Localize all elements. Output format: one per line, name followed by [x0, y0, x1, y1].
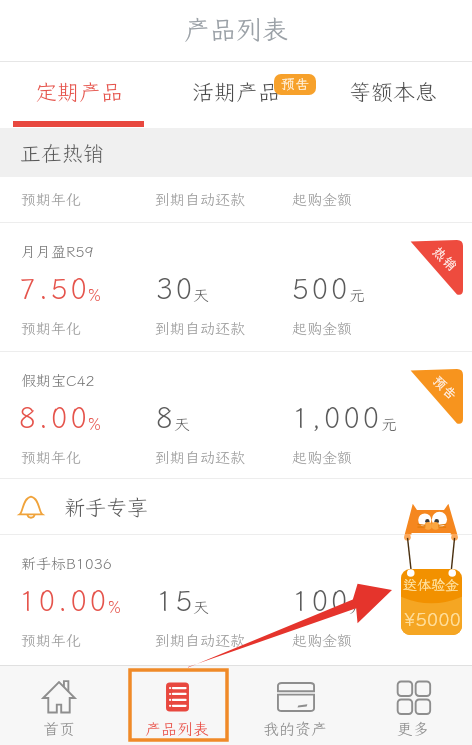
button[interactable]: 新手标B1036 — [0, 535, 472, 663]
staticText: 预期年化 — [21, 631, 82, 651]
staticText: 10.00 — [19, 582, 110, 619]
staticText: 产品列表 — [145, 718, 210, 739]
button[interactable]: 我的资产 — [236, 666, 354, 745]
staticText: 15 — [156, 582, 195, 619]
staticText: 7.50 — [19, 270, 90, 307]
staticText: 起购金额 — [292, 190, 353, 210]
staticText: 预告 — [281, 75, 309, 93]
staticText: 元 — [381, 413, 398, 434]
staticText: 更多 — [397, 718, 430, 739]
staticText: 起购金额 — [292, 448, 353, 468]
staticText: 预期年化 — [21, 448, 82, 468]
button[interactable]: 活期产品 — [158, 62, 315, 128]
button[interactable]: 更多 — [354, 666, 472, 745]
staticText: 定期产品 — [35, 77, 124, 106]
staticText: 预期年化 — [21, 190, 82, 210]
staticText: 元 — [349, 284, 366, 305]
staticText: 产品列表 — [184, 12, 289, 46]
staticText: 天 — [193, 284, 210, 305]
staticText: 到期自动还款 — [155, 190, 246, 210]
staticText: 新手标B1036 — [21, 554, 112, 574]
staticText: 500 — [292, 270, 351, 307]
staticText: 起购金额 — [292, 631, 353, 651]
staticText: 元 — [349, 596, 366, 617]
staticText: 热销 — [429, 243, 462, 276]
button[interactable]: 假期宝C42 — [0, 352, 472, 478]
staticText: % — [88, 284, 101, 305]
staticText: % — [88, 413, 101, 434]
staticText: 8.00 — [19, 399, 90, 436]
staticText: 预期年化 — [21, 319, 82, 339]
staticText: 新手专享 — [64, 493, 148, 521]
staticText: 到期自动还款 — [155, 319, 246, 339]
button[interactable]: 产品列表 — [118, 666, 236, 745]
staticText: 1,000 — [292, 399, 383, 436]
button[interactable]: 等额本息 — [315, 62, 472, 128]
staticText: 天 — [174, 413, 191, 434]
button[interactable]: 定期产品 — [0, 62, 158, 128]
staticText: 首页 — [43, 718, 76, 739]
staticText: 等额本息 — [349, 77, 438, 106]
staticText: 起购金额 — [292, 319, 353, 339]
staticText: 8 — [156, 399, 176, 436]
staticText: 送体验金 — [403, 576, 459, 594]
staticText: 我的资产 — [263, 718, 328, 739]
staticText: 100 — [292, 582, 351, 619]
staticText: % — [108, 596, 121, 617]
staticText: 天 — [193, 596, 210, 617]
staticText: 正在热销 — [20, 139, 104, 167]
button[interactable]: 首页 — [0, 666, 118, 745]
staticText: 活期产品 — [192, 77, 281, 106]
staticText: 预告 — [429, 372, 462, 405]
button[interactable]: 月月盈R59 — [0, 223, 472, 351]
staticText: 到期自动还款 — [155, 448, 246, 468]
staticText: 到期自动还款 — [155, 631, 246, 651]
staticText: 30 — [156, 270, 195, 307]
staticText: 月月盈R59 — [21, 242, 94, 262]
staticText: ¥5000 — [404, 606, 462, 631]
staticText: 假期宝C42 — [21, 371, 95, 391]
